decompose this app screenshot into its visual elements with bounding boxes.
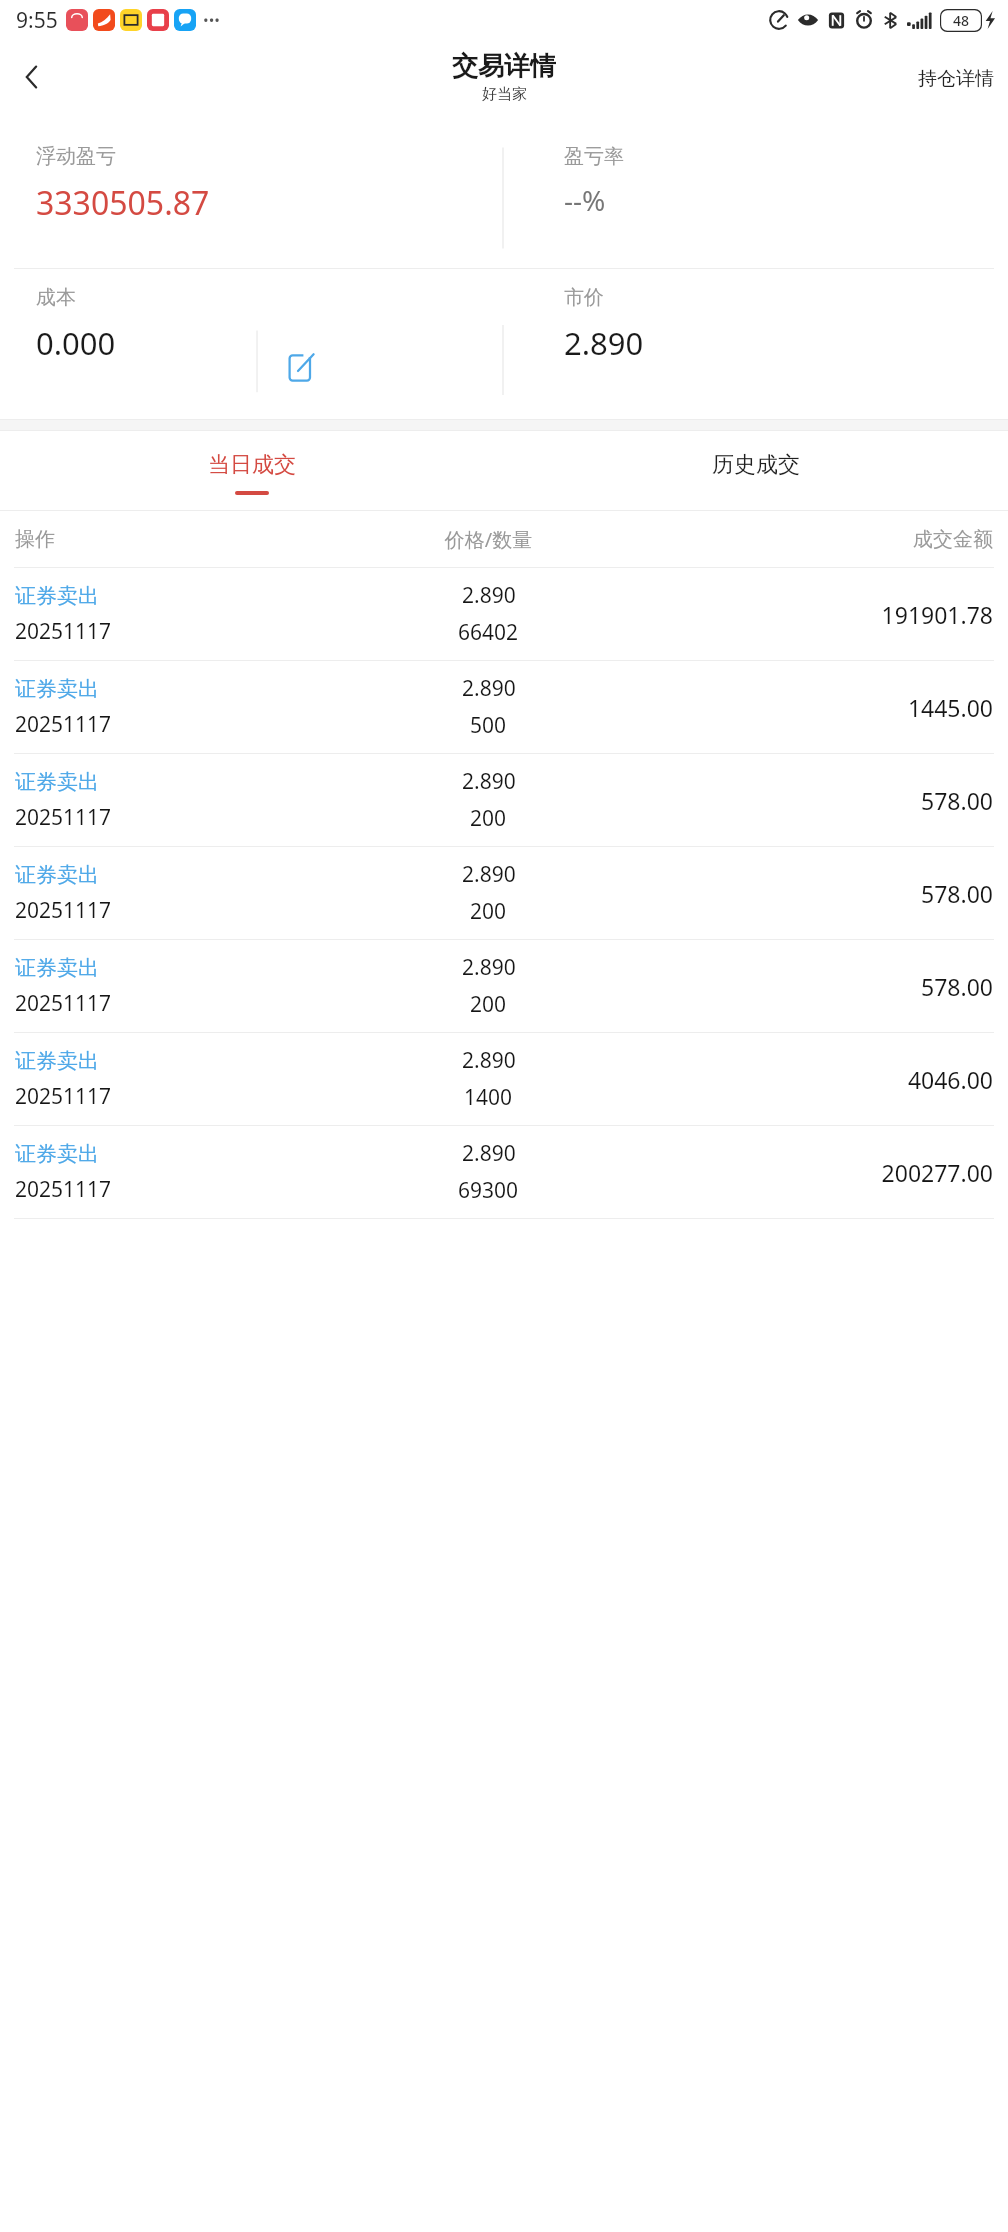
staticText: 578.00	[921, 878, 993, 909]
staticText: 20251117	[15, 617, 112, 646]
button[interactable]: 证券卖出	[0, 847, 1008, 939]
staticText: 操作	[15, 527, 331, 552]
staticText: 1400	[464, 1083, 513, 1112]
staticText: 证券卖出	[15, 583, 99, 609]
staticText: 证券卖出	[15, 862, 99, 888]
staticText: 200	[470, 990, 507, 1019]
staticText: 证券卖出	[15, 769, 99, 795]
staticText: 200	[470, 897, 507, 926]
staticText: 66402	[458, 618, 519, 647]
staticText: 证券卖出	[15, 1048, 99, 1074]
staticText: 历史成交	[712, 451, 800, 479]
staticText: 200277.00	[881, 1157, 993, 1188]
staticText: 20251117	[15, 803, 112, 832]
staticText: 2.890	[462, 581, 516, 610]
staticText: 交易详情	[452, 50, 556, 83]
staticText: 578.00	[921, 971, 993, 1002]
staticText: 191901.78	[881, 599, 993, 630]
staticText: 2.890	[462, 1046, 516, 1075]
staticText: 2.890	[564, 322, 644, 364]
staticText: 20251117	[15, 896, 112, 925]
staticText: 69300	[458, 1176, 519, 1205]
staticText: 0.000	[36, 322, 116, 364]
button[interactable]: 证券卖出	[0, 754, 1008, 846]
button[interactable]: 证券卖出	[0, 661, 1008, 753]
staticText: --%	[564, 181, 606, 219]
staticText: 证券卖出	[15, 1141, 99, 1167]
staticText: 当日成交	[208, 451, 296, 479]
staticText: 20251117	[15, 1175, 112, 1204]
staticText: 成交金额	[646, 527, 993, 552]
staticText: 20251117	[15, 989, 112, 1018]
staticText: 4046.00	[907, 1064, 993, 1095]
staticText: 证券卖出	[15, 955, 99, 981]
staticText: 成本	[36, 285, 76, 310]
button[interactable]: 证券卖出	[0, 1033, 1008, 1125]
staticText: 价格/数量	[331, 526, 646, 553]
staticText: 9:55	[16, 6, 58, 35]
staticText: 2.890	[462, 767, 516, 796]
staticText: 盈亏率	[564, 144, 624, 169]
staticText: 3330505.87	[36, 181, 210, 225]
staticText: 20251117	[15, 710, 112, 739]
staticText: 2.890	[462, 674, 516, 703]
staticText: 浮动盈亏	[36, 144, 116, 169]
staticText: 20251117	[15, 1082, 112, 1111]
staticText: •••	[203, 10, 220, 30]
staticText: 2.890	[462, 860, 516, 889]
staticText: 1445.00	[907, 692, 993, 723]
staticText: 578.00	[921, 785, 993, 816]
staticText: 500	[470, 711, 507, 740]
button[interactable]: 持仓详情	[910, 59, 1002, 99]
staticText: 市价	[564, 285, 604, 310]
staticText: 好当家	[482, 85, 527, 104]
staticText: 2.890	[462, 1139, 516, 1168]
button[interactable]: Edit cost	[280, 347, 322, 389]
button[interactable]: 当日成交	[0, 431, 504, 511]
button[interactable]: 历史成交	[504, 431, 1008, 511]
staticText: 200	[470, 804, 507, 833]
staticText: 持仓详情	[918, 67, 994, 91]
staticText: 证券卖出	[15, 676, 99, 702]
staticText: 2.890	[462, 953, 516, 982]
button[interactable]: Back	[4, 49, 60, 105]
button[interactable]: 证券卖出	[0, 568, 1008, 660]
button[interactable]: 证券卖出	[0, 940, 1008, 1032]
button[interactable]: 证券卖出	[0, 1126, 1008, 1218]
staticText: 48	[953, 11, 970, 30]
